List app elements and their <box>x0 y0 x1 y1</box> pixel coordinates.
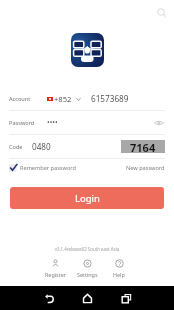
button[interactable]: Login <box>10 187 164 209</box>
button[interactable]: Settings <box>71 259 103 278</box>
staticText: Code <box>9 143 23 151</box>
button[interactable]: Remember password <box>9 163 76 173</box>
staticText: 0480 <box>32 141 51 152</box>
staticText: New password <box>126 164 165 172</box>
button[interactable]: Show password <box>153 117 165 129</box>
staticText: Remember password <box>20 164 76 172</box>
button[interactable]: +852 <box>47 94 81 104</box>
staticText: 7164 <box>130 140 156 153</box>
button[interactable]: Register <box>39 259 71 278</box>
staticText: Settings <box>77 271 98 278</box>
staticText: 61573689 <box>91 93 129 104</box>
staticText: Help <box>113 271 125 278</box>
button[interactable]: Home <box>80 291 94 305</box>
button[interactable]: New password <box>126 164 165 172</box>
button[interactable]: Back <box>42 291 56 305</box>
button[interactable]: Search <box>153 4 169 20</box>
button[interactable]: Help <box>103 259 135 278</box>
staticText: Account <box>9 95 31 103</box>
button[interactable]: 7164 <box>121 140 165 153</box>
staticText: •••• <box>47 118 58 128</box>
staticText: +852 <box>54 94 72 104</box>
staticText: Password <box>9 119 35 127</box>
staticText: v3.1.4release02 South east Asia <box>0 246 174 252</box>
staticText: Login <box>75 192 100 205</box>
button[interactable]: Recents <box>119 291 133 305</box>
staticText: Register <box>45 271 66 278</box>
